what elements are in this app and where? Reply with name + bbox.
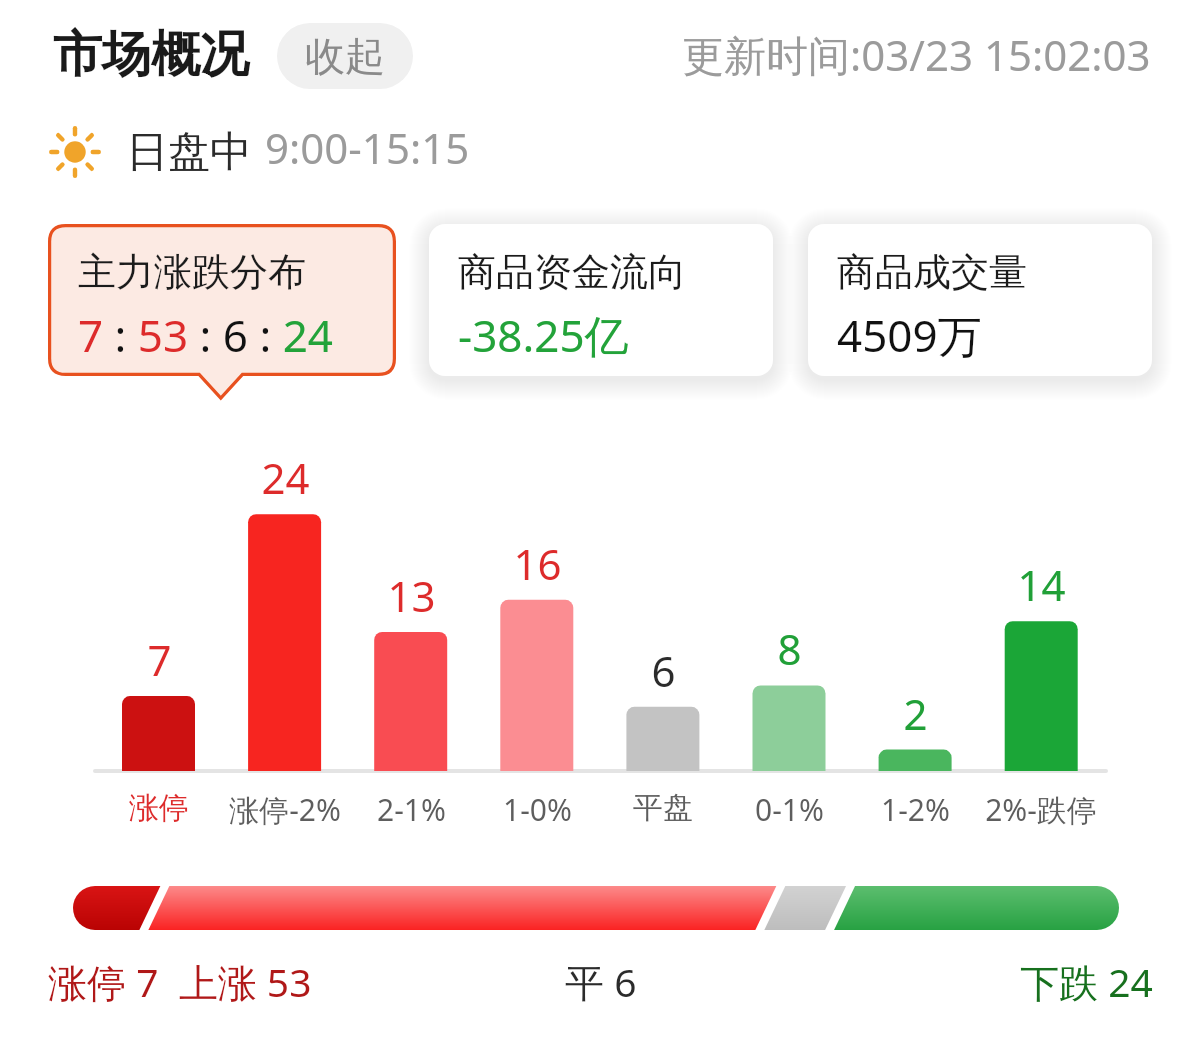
button[interactable]: 16 (476, 535, 598, 839)
staticText: 2-1% (377, 789, 446, 830)
button[interactable]: 8 (728, 620, 850, 839)
button[interactable]: 2 (854, 685, 976, 839)
staticText: 16 (513, 535, 562, 592)
other: Day session (50, 127, 100, 177)
staticText: 市场概况 (53, 24, 249, 86)
staticText: 涨停-2% (229, 789, 341, 830)
button[interactable]: 涨停 7 上涨 53 (48, 955, 417, 1008)
button[interactable]: 下跌 24 (785, 955, 1153, 1008)
staticText: 8 (777, 620, 802, 677)
staticText: 13 (387, 567, 436, 624)
button[interactable]: 商品资金流向 (429, 224, 773, 376)
staticText: 14 (1017, 556, 1066, 613)
staticText: 平 6 (565, 955, 637, 1008)
staticText: 平盘 (633, 789, 693, 827)
staticText: 2%-跌停 (985, 789, 1097, 830)
button[interactable]: 14 (980, 556, 1102, 839)
staticText: 7 : 53 : 6 : 24 (78, 305, 334, 365)
staticText: -38.25亿 (458, 305, 629, 365)
button[interactable]: 市场概况 (40, 12, 262, 98)
staticText: 涨停 7 上涨 53 (48, 955, 312, 1008)
staticText: 6 (651, 642, 676, 699)
staticText: 主力涨跌分布 (78, 248, 306, 296)
button[interactable]: 主力涨跌分布 (48, 224, 396, 400)
staticText: 0-1% (755, 789, 824, 830)
staticText: 商品成交量 (837, 248, 1027, 296)
staticText: 4509万 (837, 305, 982, 365)
button[interactable]: 平 6 (417, 955, 785, 1008)
staticText: 7 (147, 631, 172, 688)
button[interactable]: 6 (602, 642, 724, 839)
button[interactable]: 7 (98, 631, 220, 839)
button[interactable]: 13 (350, 567, 472, 839)
button[interactable]: 收起 (277, 23, 413, 89)
button[interactable]: 商品成交量 (808, 224, 1152, 376)
staticText: 更新时间:03/23 15:02:03 (682, 26, 1151, 83)
staticText: 商品资金流向 (458, 248, 686, 296)
staticText: 下跌 24 (1020, 955, 1153, 1008)
staticText: 2 (903, 685, 928, 742)
staticText: 日盘中 (126, 126, 252, 178)
staticText: 收起 (305, 31, 385, 81)
staticText: 9:00-15:15 (265, 119, 470, 171)
staticText: 涨停 (129, 789, 189, 827)
staticText: 1-2% (881, 789, 950, 830)
staticText: 24 (261, 449, 310, 506)
staticText: 1-0% (503, 789, 572, 830)
button[interactable]: 24 (224, 449, 346, 839)
